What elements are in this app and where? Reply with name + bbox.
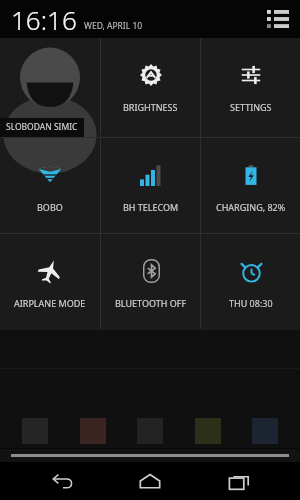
button[interactable]: User SLOBODAN SIMIC — [0, 38, 100, 137]
staticText: THU 08:30 — [229, 297, 273, 309]
staticText: BOBO — [37, 201, 63, 213]
button[interactable]: Alarm — [201, 234, 300, 329]
button[interactable]: Home — [123, 462, 177, 500]
staticText: CHARGING, 82% — [216, 201, 286, 213]
staticText: AIRPLANE MODE — [14, 297, 86, 309]
button[interactable]: Notifications — [263, 4, 293, 34]
button[interactable]: Bluetooth — [101, 234, 200, 329]
staticText: WED, APRIL 10 — [84, 20, 143, 32]
button[interactable]: Airplane mode — [0, 234, 100, 329]
button[interactable]: Battery — [201, 138, 300, 233]
button[interactable]: Back — [35, 462, 89, 500]
button[interactable]: Mobile network — [101, 138, 200, 233]
button[interactable]: Wi-Fi — [0, 138, 100, 233]
staticText: SETTINGS — [230, 101, 272, 113]
staticText: BH TELECOM — [123, 201, 179, 213]
button[interactable]: Recent apps — [212, 462, 266, 500]
button[interactable]: Settings — [201, 38, 300, 137]
staticText: 16:16 — [11, 2, 77, 37]
button[interactable]: Brightness — [101, 38, 200, 137]
staticText: BRIGHTNESS — [123, 101, 178, 113]
staticText: BLUETOOTH OFF — [115, 297, 187, 309]
staticText: SLOBODAN SIMIC — [6, 121, 78, 133]
